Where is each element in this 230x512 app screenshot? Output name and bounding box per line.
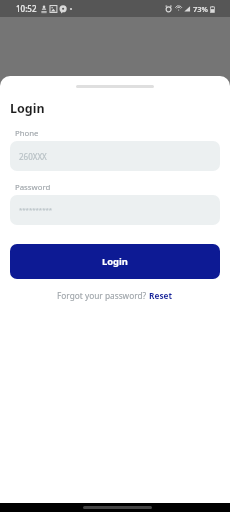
staticText: 10:52	[16, 3, 37, 14]
staticText: Login	[102, 255, 128, 268]
button[interactable]: Login	[10, 244, 220, 279]
button[interactable]: Reset	[149, 290, 173, 301]
staticText: 260XXX	[19, 151, 47, 162]
button[interactable]: **********	[10, 195, 220, 225]
staticText: Forgot your password?	[57, 290, 149, 301]
button[interactable]: 260XXX	[10, 141, 220, 171]
staticText: **********	[19, 206, 53, 214]
staticText: 73%	[193, 4, 208, 14]
staticText: Login	[10, 100, 45, 117]
staticText: Phone	[15, 128, 39, 139]
staticText: Reset	[149, 290, 173, 301]
staticText: Password	[15, 182, 51, 193]
